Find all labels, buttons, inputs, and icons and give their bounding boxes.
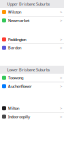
staticText: Bardon [8,45,21,50]
staticText: > [60,9,62,15]
button[interactable]: Wilston [0,8,64,16]
staticText: Newmarket [8,18,29,23]
staticText: Milton [8,105,19,111]
button[interactable]: Toowong [0,74,64,82]
staticText: Paddington [8,37,26,42]
staticText: > [60,37,62,42]
staticText: > [60,105,62,111]
button[interactable]: Paddington [0,35,64,44]
button[interactable]: Bardon [0,44,64,52]
button[interactable]: Newmarket [0,16,64,24]
staticText: > [60,45,62,50]
staticText: Lower Brisbane Suburbs [7,67,50,72]
staticText: Auchenflower [8,83,32,89]
staticText: Toowong [8,75,23,80]
staticText: > [60,83,62,89]
button[interactable]: Auchenflower [0,82,64,90]
button[interactable]: Indooroopilly [0,113,64,121]
staticText: Upper Brisbane Suburbs [7,1,50,7]
staticText: > [60,18,62,23]
staticText: Indooroopilly [8,114,30,119]
staticText: > [60,114,62,119]
button[interactable]: Milton [0,104,64,113]
staticText: Wilston [8,9,21,15]
staticText: > [60,75,62,80]
